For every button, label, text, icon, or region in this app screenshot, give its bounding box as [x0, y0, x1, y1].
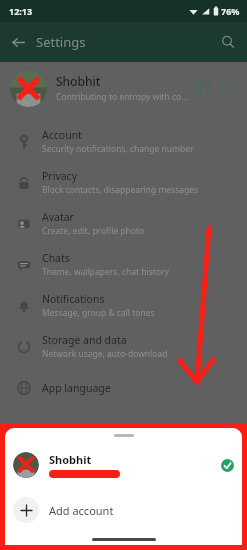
button[interactable]: Avatar	[0, 203, 247, 244]
button[interactable]: App language	[0, 367, 247, 408]
staticText: Shobhit	[49, 452, 92, 467]
staticText: Chats	[42, 251, 70, 265]
button[interactable]: Chats	[0, 244, 247, 285]
staticText: Shobhit	[56, 73, 101, 89]
staticText: Message, group & call tones	[42, 307, 155, 319]
button[interactable]: Shobhit	[5, 445, 242, 485]
staticText: Network usage, auto-download	[42, 348, 168, 360]
staticText: Block contacts, disappearing messages	[42, 184, 199, 196]
staticText: Privacy	[42, 169, 78, 183]
staticText: 12:13	[9, 5, 33, 17]
staticText: Security notifications, change number	[42, 143, 194, 155]
button[interactable]: Account	[0, 121, 247, 162]
staticText: Settings	[36, 33, 86, 51]
staticText: Notifications	[42, 292, 105, 306]
button[interactable]: Privacy	[0, 162, 247, 203]
button[interactable]: Add account	[5, 493, 242, 527]
staticText: Storage and data	[42, 333, 127, 347]
button[interactable]: Back	[4, 28, 32, 56]
staticText: Theme, wallpapers, chat history	[42, 266, 169, 278]
button[interactable]: QR code	[193, 78, 213, 98]
button[interactable]: Notifications	[0, 285, 247, 326]
staticText: Add account	[49, 503, 114, 518]
button[interactable]: Expand	[219, 79, 237, 97]
staticText: Account	[42, 128, 82, 142]
staticText: Avatar	[42, 210, 74, 224]
staticText: App language	[42, 381, 111, 395]
staticText: 76%	[221, 5, 240, 17]
staticText: Create, edit, profile photo	[42, 225, 145, 237]
staticText: Contributing to entropy with co...	[56, 91, 189, 103]
button[interactable]: Search	[215, 29, 241, 55]
button[interactable]: Shobhit	[0, 62, 247, 114]
button[interactable]: Storage and data	[0, 326, 247, 367]
